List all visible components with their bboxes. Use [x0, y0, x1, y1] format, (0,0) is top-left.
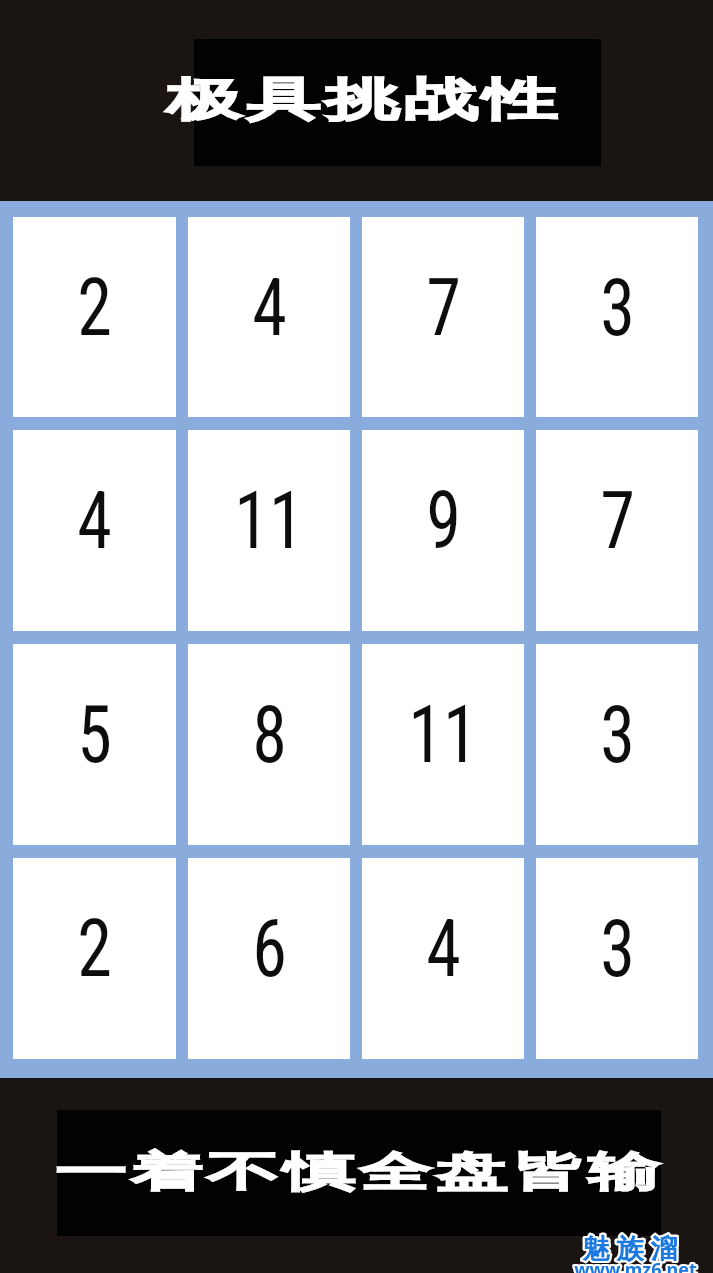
staticText: 2: [77, 262, 112, 355]
staticText: www.mz6.net: [574, 1257, 697, 1273]
button[interactable]: Tile 9: [362, 430, 524, 631]
staticText: 7: [600, 475, 635, 568]
staticText: 7: [426, 262, 461, 355]
button[interactable]: Tile 5: [13, 644, 176, 845]
button[interactable]: Tile 4: [13, 430, 176, 631]
staticText: 5: [77, 689, 112, 782]
staticText: 9: [426, 475, 461, 568]
staticText: 4: [252, 262, 287, 355]
staticText: 11: [234, 475, 304, 568]
staticText: 3: [600, 903, 635, 996]
button[interactable]: Tile 11: [362, 644, 524, 845]
button[interactable]: Tile 2: [13, 858, 176, 1059]
button[interactable]: Tile 4: [188, 217, 350, 417]
staticText: 4: [77, 475, 112, 568]
staticText: 极具挑战性: [164, 72, 560, 129]
button[interactable]: Tile 8: [188, 644, 350, 845]
button[interactable]: Tile 11: [188, 430, 350, 631]
staticText: 6: [252, 903, 287, 996]
button[interactable]: Tile 7: [536, 430, 698, 631]
staticText: 魅族溜: [579, 1232, 681, 1266]
staticText: 4: [426, 903, 461, 996]
staticText: www.mz6.net: [574, 1257, 697, 1273]
staticText: 3: [600, 689, 635, 782]
button[interactable]: Tile 3: [536, 217, 698, 417]
button[interactable]: Tile 6: [188, 858, 350, 1059]
button[interactable]: Tile 3: [536, 858, 698, 1059]
staticText: 一着不慎全盘皆输: [54, 1147, 665, 1199]
staticText: 2: [77, 903, 112, 996]
button[interactable]: Tile 7: [362, 217, 524, 417]
button[interactable]: Tile 3: [536, 644, 698, 845]
staticText: 11: [408, 689, 478, 782]
staticText: 3: [600, 262, 635, 355]
button[interactable]: Tile 2: [13, 217, 176, 417]
button[interactable]: Tile 4: [362, 858, 524, 1059]
staticText: 8: [252, 689, 287, 782]
staticText: 魅族溜: [579, 1232, 681, 1266]
